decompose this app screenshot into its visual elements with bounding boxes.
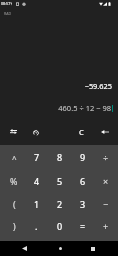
staticText: + [103, 220, 109, 232]
staticText: C [79, 127, 84, 137]
button[interactable]: Recents [85, 241, 100, 256]
staticText: % [10, 175, 18, 187]
button[interactable]: + [94, 214, 117, 237]
staticText: ) [13, 220, 16, 232]
button[interactable]: Unit converter [5, 123, 22, 140]
button[interactable]: − [94, 192, 117, 215]
staticText: ÷ [103, 151, 109, 163]
staticText: ^ [12, 153, 17, 164]
staticText: RAD [4, 11, 11, 16]
button[interactable]: Back [17, 241, 32, 256]
button[interactable]: ( [3, 192, 25, 215]
staticText: 4 [34, 175, 40, 187]
button[interactable]: × [94, 169, 117, 192]
staticText: = [80, 220, 86, 232]
staticText: −59.625 [84, 81, 112, 91]
staticText: 08:57 [1, 1, 11, 6]
button[interactable]: Home [53, 241, 68, 256]
staticText: . [35, 220, 38, 232]
staticText: 3 [80, 198, 86, 210]
button[interactable]: 3 [71, 192, 94, 215]
button[interactable]: ^ [3, 145, 25, 168]
staticText: 0 [57, 220, 63, 232]
button[interactable]: C [73, 123, 90, 140]
staticText: 1 [34, 198, 40, 210]
button[interactable]: ÷ [94, 145, 117, 168]
button[interactable]: 8 [48, 145, 71, 168]
staticText: × [103, 175, 109, 187]
button[interactable]: 6 [71, 169, 94, 192]
button[interactable]: = [71, 214, 94, 237]
button[interactable]: 0 [48, 214, 71, 237]
button[interactable]: ) [3, 214, 25, 237]
button[interactable]: 5 [48, 169, 71, 192]
staticText: 460.5 ÷ 12 − 98 [58, 103, 111, 113]
staticText: 6 [80, 175, 86, 187]
staticText: 2 [57, 198, 63, 210]
staticText: 9 [80, 151, 86, 163]
button[interactable]: 7 [25, 145, 48, 168]
button[interactable]: History [27, 123, 44, 140]
button[interactable]: 9 [71, 145, 94, 168]
button[interactable]: Backspace [96, 123, 113, 140]
button[interactable]: 4 [25, 169, 48, 192]
button[interactable]: % [3, 169, 25, 192]
button[interactable]: . [25, 214, 48, 237]
staticText: 5 [57, 175, 63, 187]
staticText: − [103, 198, 109, 210]
staticText: ( [13, 198, 16, 210]
button[interactable]: 2 [48, 192, 71, 215]
staticText: 7 [34, 151, 40, 163]
button[interactable]: 1 [25, 192, 48, 215]
staticText: 8 [57, 151, 63, 163]
